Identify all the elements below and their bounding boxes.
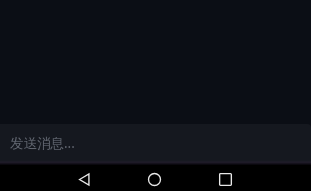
- staticText: 发送消息...: [10, 134, 75, 152]
- button[interactable]: Recent apps: [212, 166, 238, 191]
- button[interactable]: 发送消息...: [0, 124, 311, 165]
- button[interactable]: Home: [141, 166, 167, 191]
- button[interactable]: Back: [71, 166, 97, 191]
